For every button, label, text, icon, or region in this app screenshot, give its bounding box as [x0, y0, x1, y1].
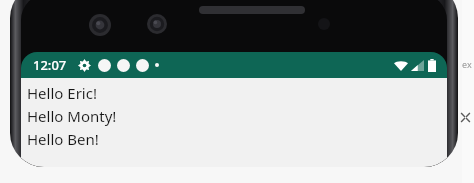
button[interactable]: Hello Monty! [27, 104, 447, 127]
button[interactable]: Hello Eric! [27, 81, 447, 104]
staticText: Hello Eric! [27, 83, 97, 103]
button[interactable]: Settings notification [78, 59, 91, 72]
other: Wi-Fi [394, 60, 408, 71]
staticText: Hello Ben! [27, 129, 99, 149]
other: Battery [428, 59, 436, 72]
button[interactable]: Hello Ben! [27, 127, 447, 150]
other: Cellular signal [411, 60, 424, 71]
staticText: Hello Monty! [27, 106, 117, 126]
staticText: 12:07 [33, 56, 67, 74]
staticText: ex [462, 58, 472, 70]
